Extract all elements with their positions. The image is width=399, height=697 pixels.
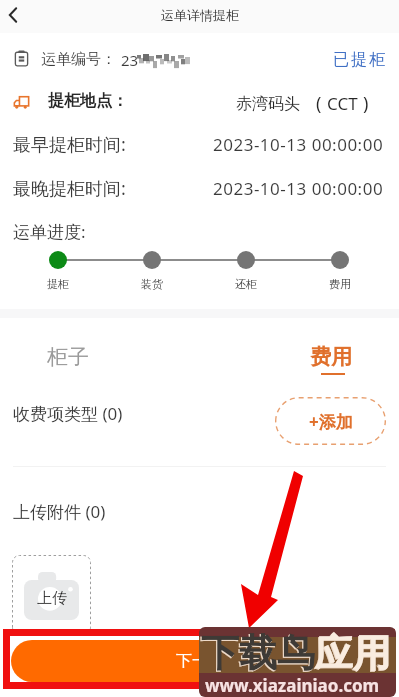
staticText: 还柜 [235,277,257,291]
button[interactable]: 柜子 [30,336,106,378]
staticText: 2023-10-13 00:00:00 [213,133,384,156]
staticText: 下一步 [176,651,224,671]
staticText: 最早提柜时间: [13,132,126,157]
staticText: 最晚提柜时间: [13,176,126,201]
button[interactable]: 费用 [295,336,371,384]
staticText: 下载鸟应用 [200,630,390,678]
button[interactable]: 下一步 [11,640,388,682]
staticText: 运单编号： [41,50,116,69]
staticText: CCT [327,92,358,115]
button[interactable]: +添加 [275,397,386,445]
staticText: 费用 [310,344,352,370]
staticText: 下载鸟 [201,629,315,677]
staticText: 柜子 [47,344,89,370]
staticText: 收费项类型 (0) [13,402,123,425]
staticText: 运单进度: [13,220,86,243]
button[interactable]: Back [0,0,33,33]
staticText: 赤湾码头 [236,94,300,114]
staticText: 提柜地点： [48,91,128,111]
staticText: 应用 [315,629,391,677]
staticText: +添加 [309,410,353,433]
button[interactable]: 已提柜 [332,50,386,70]
staticText: www.xiazainiao.com [205,674,380,697]
staticText: 提柜 [47,277,69,291]
staticText: 运单详情提柜 [161,7,239,23]
staticText: 上传附件 (0) [13,500,106,523]
staticText: 2023-10-13 00:00:00 [213,177,384,200]
staticText: 上传 [37,589,67,608]
button[interactable]: Upload attachment [12,555,91,635]
staticText: 费用 [329,277,351,291]
staticText: ) [363,91,369,116]
staticText: ( [316,91,322,116]
staticText: 装货 [141,277,163,291]
staticText: 23 [121,50,139,70]
